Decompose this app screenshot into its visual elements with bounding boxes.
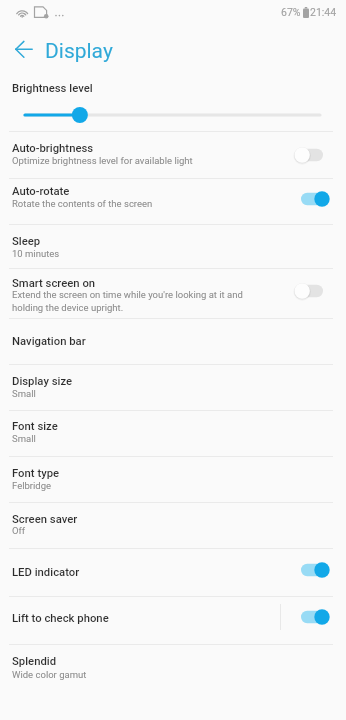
staticText: 10 minutes xyxy=(12,248,60,259)
staticText: Font size xyxy=(12,420,58,433)
staticText: Auto-rotate xyxy=(12,185,70,198)
staticText: Navigation bar xyxy=(12,335,86,348)
button[interactable] xyxy=(0,318,346,364)
button[interactable] xyxy=(0,224,346,268)
button[interactable] xyxy=(0,502,346,548)
button[interactable] xyxy=(0,410,346,455)
button[interactable] xyxy=(0,178,346,223)
staticText: Auto-brightness xyxy=(12,142,94,155)
staticText: LED indicator xyxy=(12,566,80,579)
staticText: Sleep xyxy=(12,235,41,248)
staticText: Display size xyxy=(12,375,73,388)
staticText: Display xyxy=(45,39,113,64)
staticText: Rotate the contents of the screen xyxy=(12,198,153,209)
staticText: Splendid xyxy=(12,655,57,668)
button[interactable] xyxy=(0,364,346,410)
staticText: Off xyxy=(12,525,26,536)
staticText: 67% xyxy=(281,6,301,18)
button[interactable]: Switch on xyxy=(294,604,338,630)
staticText: Felbridge xyxy=(12,480,52,491)
staticText: Small xyxy=(12,388,36,399)
button[interactable]: Switch off xyxy=(294,142,338,168)
button[interactable]: Back xyxy=(6,31,42,67)
button[interactable] xyxy=(0,268,346,318)
staticText: Optimize brightness level for available … xyxy=(12,155,193,166)
staticText: Extend the screen on time while you're l… xyxy=(12,289,243,300)
button[interactable] xyxy=(0,548,346,596)
staticText: Font type xyxy=(12,467,60,480)
button[interactable]: Switch on xyxy=(294,186,338,212)
button[interactable]: Switch on xyxy=(294,557,338,583)
button[interactable] xyxy=(0,131,346,178)
staticText: Small xyxy=(12,433,36,444)
button[interactable]: Switch off xyxy=(294,278,338,304)
staticText: 21:44 xyxy=(310,6,337,18)
staticText: Brightness level xyxy=(12,82,93,95)
staticText: Smart screen on xyxy=(12,277,96,290)
button[interactable]: Brightness slider xyxy=(12,103,334,127)
button[interactable] xyxy=(0,596,346,644)
staticText: Wide color gamut xyxy=(12,669,87,680)
button[interactable] xyxy=(0,456,346,502)
button[interactable] xyxy=(0,644,346,690)
staticText: Lift to check phone xyxy=(12,612,109,625)
staticText: Screen saver xyxy=(12,513,78,526)
staticText: holding the device upright. xyxy=(12,302,124,313)
